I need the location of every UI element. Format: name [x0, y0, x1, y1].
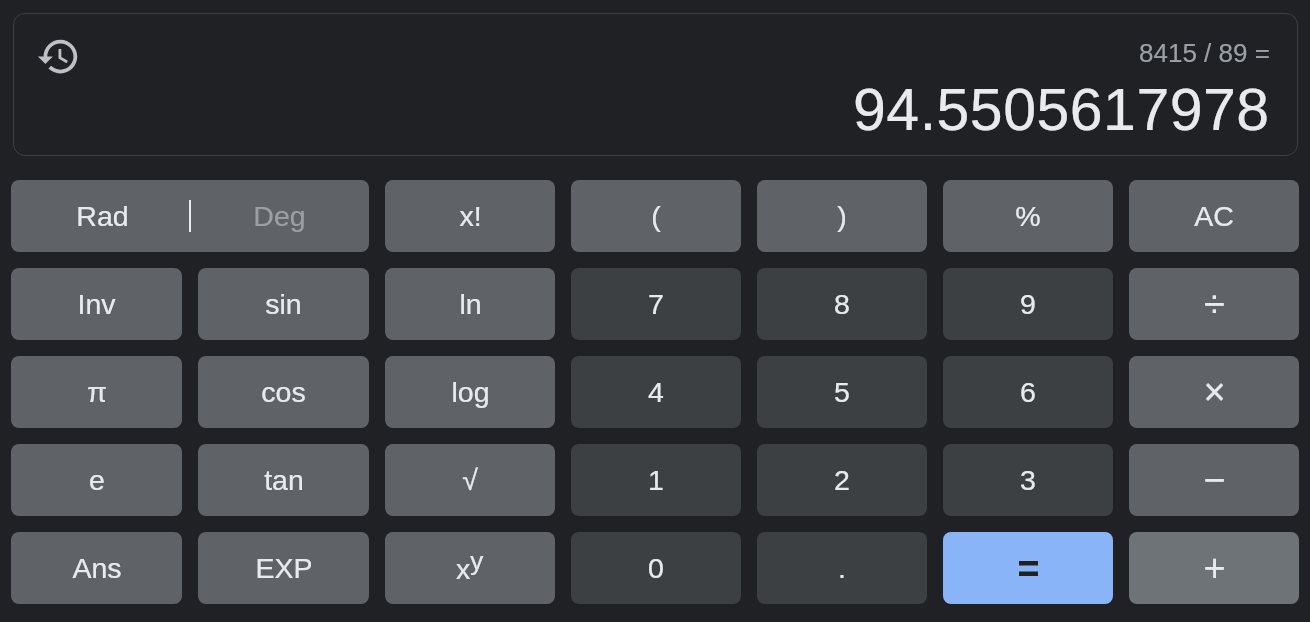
staticText: 0 — [648, 552, 664, 584]
button[interactable]: ) — [757, 180, 927, 252]
button[interactable]: 7 — [571, 268, 741, 340]
staticText: 8415 / 89 = — [1139, 38, 1270, 67]
button[interactable]: 1 — [571, 444, 741, 516]
button[interactable]: . — [757, 532, 927, 604]
staticText: % — [1015, 200, 1041, 232]
staticText: + — [1203, 547, 1226, 589]
staticText: − — [1203, 459, 1226, 501]
button[interactable]: 5 — [757, 356, 927, 428]
button[interactable]: 9 — [943, 268, 1113, 340]
button[interactable]: ln — [385, 268, 555, 340]
button[interactable]: History — [36, 34, 81, 79]
button[interactable]: 3 — [943, 444, 1113, 516]
staticText: 1 — [648, 464, 664, 496]
staticText: 94.5505617978 — [853, 77, 1270, 143]
staticText: xy — [456, 546, 484, 585]
button[interactable]: tan — [198, 444, 369, 516]
staticText: 7 — [648, 288, 664, 320]
staticText: . — [838, 552, 846, 584]
staticText: 5 — [834, 376, 850, 408]
button[interactable]: Ans — [11, 532, 182, 604]
button[interactable]: Inv — [11, 268, 182, 340]
button[interactable]: log — [385, 356, 555, 428]
staticText: EXP — [255, 552, 313, 584]
staticText: ) — [837, 200, 847, 232]
staticText: sin — [265, 288, 302, 320]
staticText: tan — [264, 464, 304, 496]
button[interactable]: AC — [1129, 180, 1299, 252]
button[interactable]: EXP — [198, 532, 369, 604]
button[interactable]: × — [1129, 356, 1299, 428]
button[interactable]: + — [1129, 532, 1299, 604]
staticText: log — [451, 376, 490, 408]
staticText: 2 — [834, 464, 850, 496]
button[interactable]: e — [11, 444, 182, 516]
staticText: x! — [459, 200, 482, 232]
button[interactable]: sin — [198, 268, 369, 340]
button[interactable]: x! — [385, 180, 555, 252]
button[interactable]: 6 — [943, 356, 1113, 428]
button[interactable]: 8 — [757, 268, 927, 340]
button[interactable]: cos — [198, 356, 369, 428]
button[interactable]: √ — [385, 444, 555, 516]
staticText: 8 — [834, 288, 850, 320]
staticText: 3 — [1020, 464, 1036, 496]
staticText: Ans — [72, 552, 122, 584]
button[interactable]: π — [11, 356, 182, 428]
staticText: AC — [1194, 200, 1234, 232]
button[interactable]: % — [943, 180, 1113, 252]
button[interactable]: Equals — [943, 532, 1113, 604]
staticText: √ — [462, 464, 478, 496]
staticText: 4 — [648, 376, 664, 408]
staticText: ln — [459, 288, 482, 320]
staticText: Deg — [253, 200, 306, 232]
staticText: Rad — [76, 200, 129, 232]
staticText: × — [1203, 371, 1226, 413]
staticText: ( — [651, 200, 661, 232]
button[interactable]: ÷ — [1129, 268, 1299, 340]
button[interactable]: xy — [385, 532, 555, 604]
button[interactable]: 0 — [571, 532, 741, 604]
button[interactable]: ( — [571, 180, 741, 252]
staticText: e — [89, 464, 105, 496]
staticText: π — [87, 376, 107, 408]
button[interactable]: 2 — [757, 444, 927, 516]
staticText: ÷ — [1204, 283, 1225, 325]
button[interactable]: − — [1129, 444, 1299, 516]
staticText: 9 — [1020, 288, 1036, 320]
staticText: cos — [261, 376, 306, 408]
staticText: Inv — [77, 288, 116, 320]
staticText: 6 — [1020, 376, 1036, 408]
button[interactable]: Rad — [11, 180, 369, 252]
button[interactable]: 4 — [571, 356, 741, 428]
